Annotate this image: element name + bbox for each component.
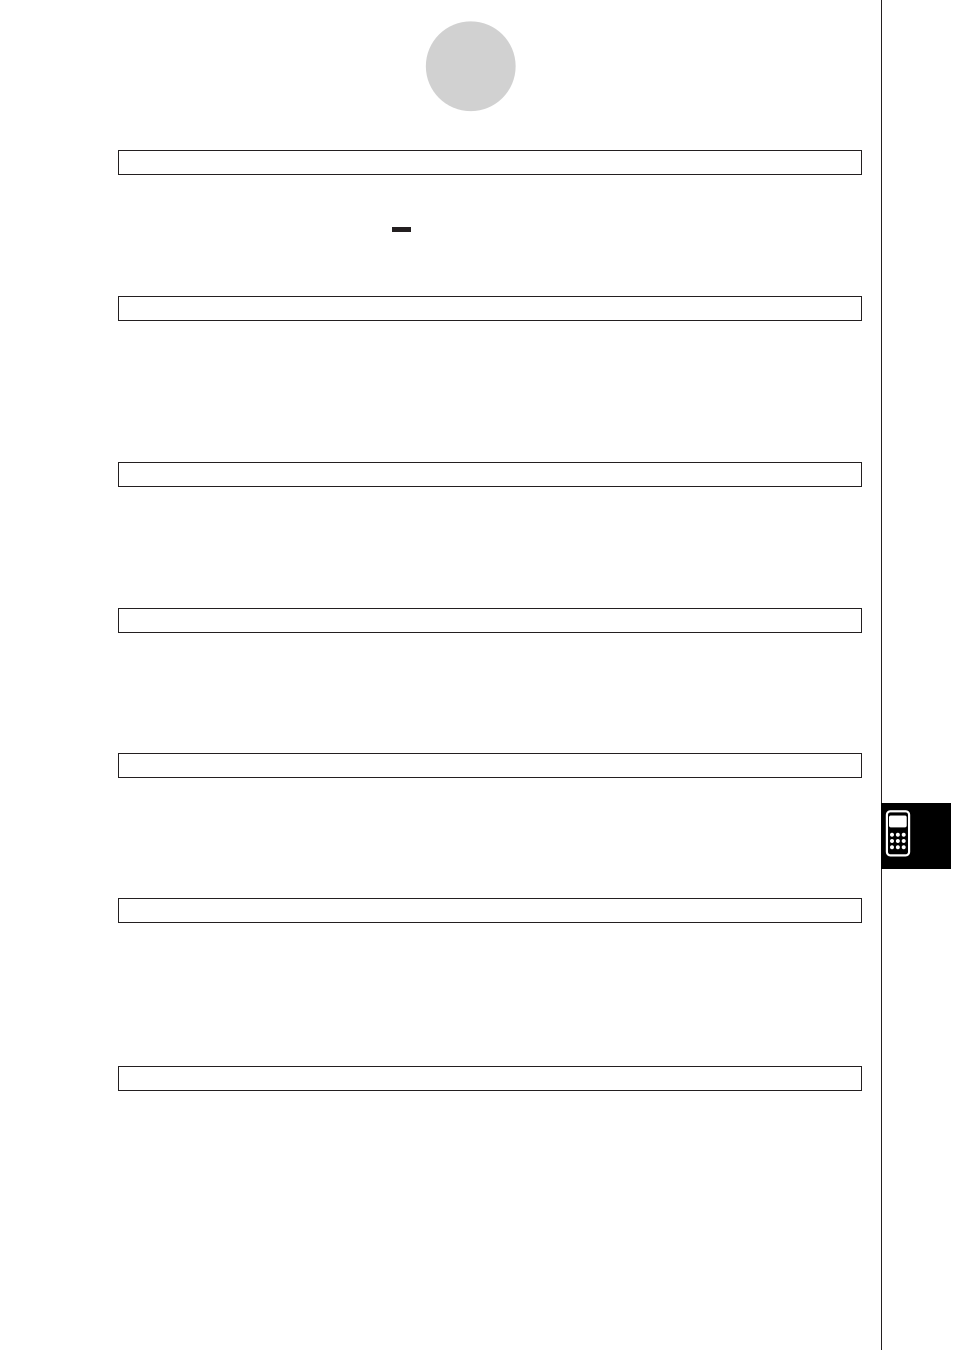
button[interactable]: Street address <box>118 462 862 487</box>
button[interactable]: Email <box>118 296 862 321</box>
button[interactable]: State <box>118 753 862 778</box>
button[interactable]: Name <box>118 150 862 175</box>
button[interactable]: Phone number <box>118 1066 862 1091</box>
button[interactable]: Calculator <box>881 803 951 869</box>
button[interactable]: City <box>118 608 862 633</box>
button[interactable]: Postal code <box>118 898 862 923</box>
button[interactable]: Profile photo <box>426 21 516 111</box>
